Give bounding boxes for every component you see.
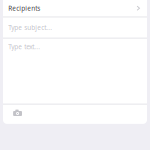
button[interactable]: Type text... <box>3 39 147 104</box>
button[interactable]: Type subject... <box>3 17 147 38</box>
staticText: Type text... <box>8 42 40 51</box>
staticText: Recipients <box>8 4 40 12</box>
staticText: Type subject... <box>8 23 52 32</box>
button[interactable]: Attach photo <box>3 105 147 124</box>
button[interactable]: Recipients <box>3 0 147 16</box>
